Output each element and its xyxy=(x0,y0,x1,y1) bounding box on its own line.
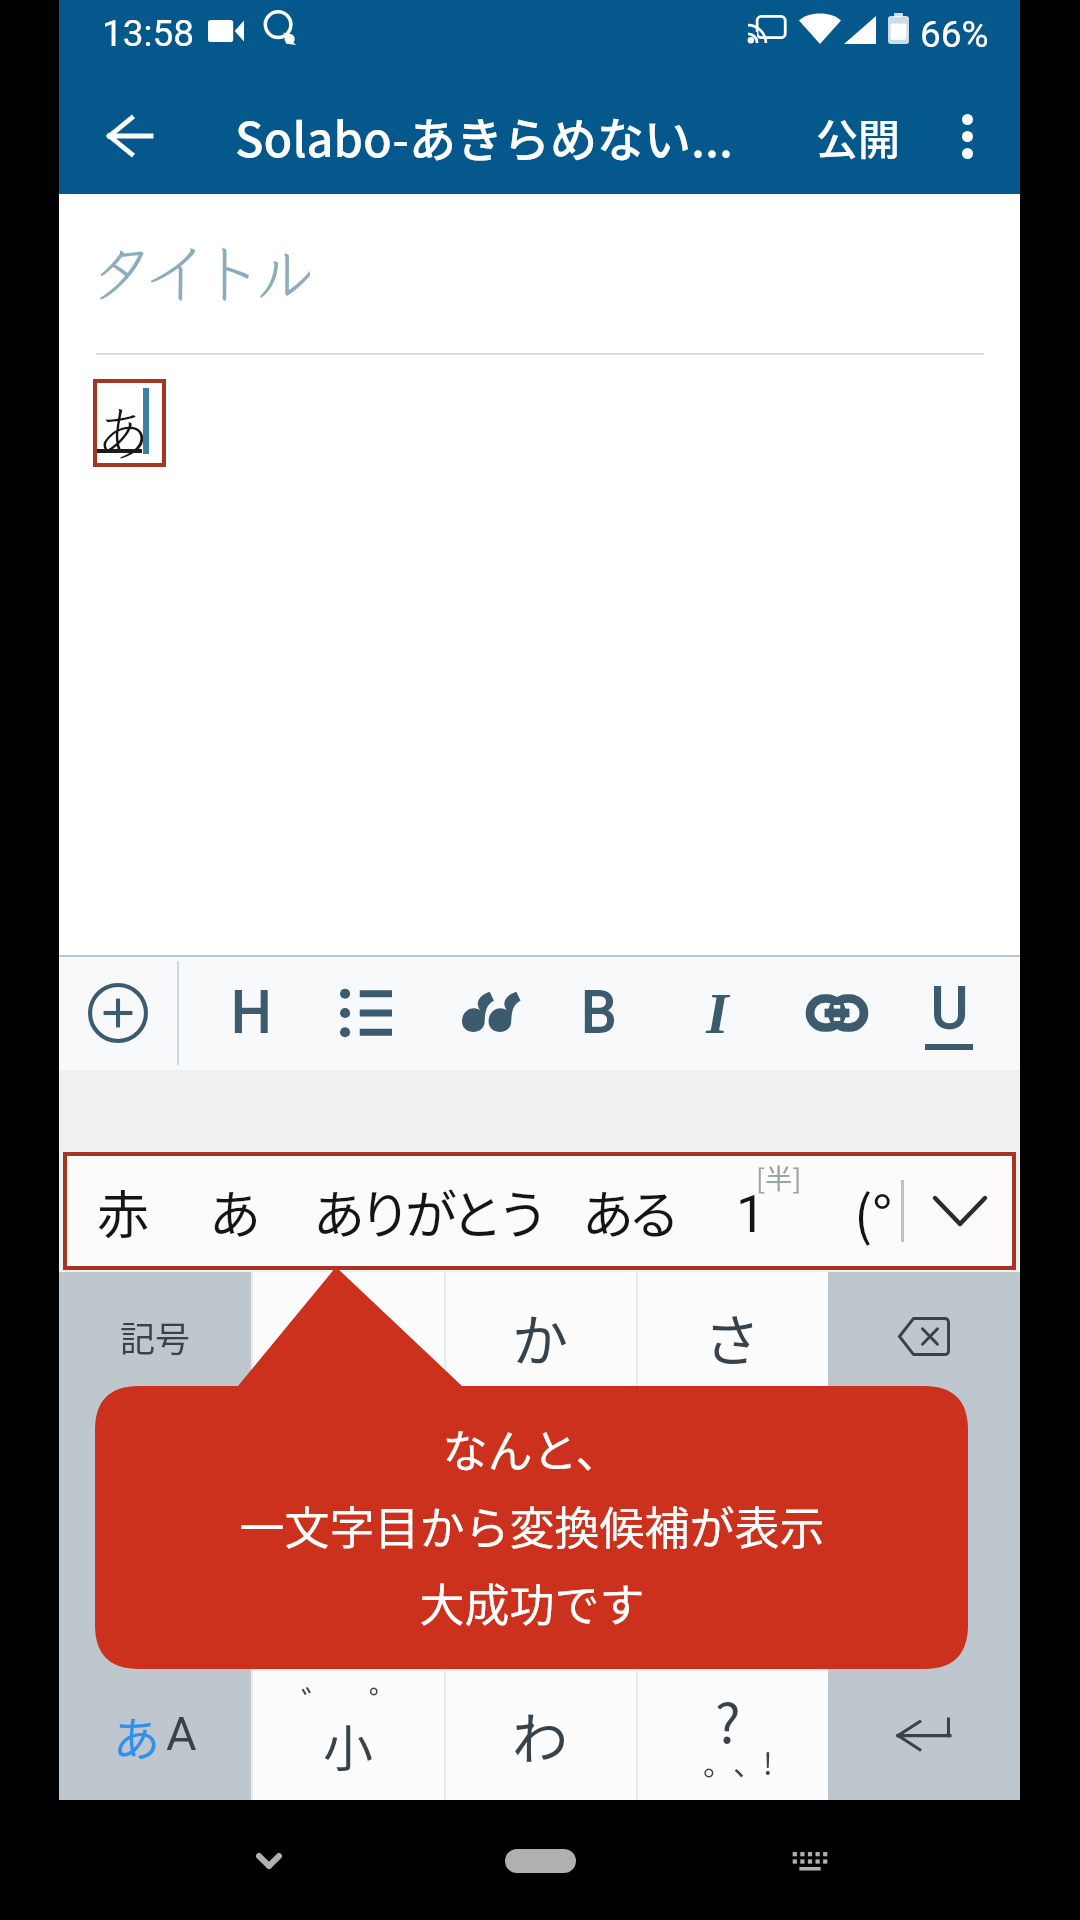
staticText: 13:58 xyxy=(102,12,195,55)
staticText: 1 xyxy=(736,1184,766,1245)
staticText: あ xyxy=(113,1701,160,1769)
button[interactable]: Switch keyboard xyxy=(750,1802,870,1920)
staticText: 大成功です xyxy=(419,1570,645,1635)
staticText: 赤 xyxy=(97,1174,144,1249)
staticText: あ xyxy=(209,1174,256,1249)
button[interactable]: Expand candidates xyxy=(915,1152,1005,1270)
staticText: Solabo-あきらめない... xyxy=(235,102,734,170)
button[interactable]: ありがとう xyxy=(288,1152,568,1270)
button[interactable]: Hide keyboard xyxy=(209,1802,329,1920)
button[interactable]: More options xyxy=(919,78,1015,194)
staticText: H xyxy=(231,979,272,1046)
button[interactable]: た xyxy=(251,1400,444,1528)
staticText: さ xyxy=(704,1296,760,1377)
button[interactable]: 1 xyxy=(700,1152,860,1270)
staticText: 小 xyxy=(323,1709,373,1781)
staticText: なんと、 xyxy=(442,1416,621,1481)
staticText: 一文字目から変換候補が表示 xyxy=(239,1493,825,1558)
button[interactable]: H xyxy=(206,955,296,1070)
button[interactable]: Quote xyxy=(443,955,533,1070)
staticText: わ xyxy=(512,1694,568,1775)
button[interactable]: 記号 xyxy=(59,1272,251,1400)
button[interactable]: Bullet list xyxy=(321,955,411,1070)
staticText: B xyxy=(581,979,617,1046)
staticText: タイトル xyxy=(88,218,310,304)
staticText: や xyxy=(512,1558,568,1639)
button[interactable]: あ xyxy=(59,1669,251,1800)
staticText: な xyxy=(512,1424,568,1505)
button[interactable]: さ xyxy=(636,1272,828,1400)
staticText: 。、! xyxy=(703,1740,773,1783)
button[interactable]: I xyxy=(672,955,762,1070)
button[interactable]: や xyxy=(444,1528,636,1669)
button[interactable]: か xyxy=(444,1272,636,1400)
button[interactable]: は xyxy=(636,1400,828,1528)
button[interactable]: ゛ ゜ xyxy=(251,1669,444,1800)
button[interactable]: 赤 xyxy=(0,1152,260,1270)
button[interactable]: ら xyxy=(636,1528,828,1669)
button[interactable]: ある xyxy=(488,1152,768,1270)
staticText: 66% xyxy=(920,13,989,56)
staticText: A xyxy=(166,1706,197,1761)
button[interactable]: B xyxy=(554,955,644,1070)
button[interactable] xyxy=(828,1528,1020,1669)
staticText: ゛ ゜ xyxy=(301,1677,403,1726)
staticText: ある xyxy=(582,1174,675,1249)
button[interactable]: U xyxy=(904,955,994,1070)
staticText: あ xyxy=(94,387,153,471)
staticText: 公開 xyxy=(816,106,901,167)
button[interactable]: ☆123 xyxy=(59,1400,251,1528)
button[interactable]: な xyxy=(444,1400,636,1528)
staticText: か xyxy=(512,1296,568,1377)
staticText: U xyxy=(931,975,968,1042)
button[interactable]: あ xyxy=(251,1272,444,1400)
button[interactable]: 公開 xyxy=(785,78,931,194)
button[interactable]: Add block xyxy=(73,955,163,1070)
button[interactable]: Insert link xyxy=(792,955,882,1070)
staticText: あ xyxy=(320,1296,376,1377)
button[interactable]: ? xyxy=(636,1669,828,1800)
button[interactable] xyxy=(828,1669,1020,1800)
button[interactable]: ABC xyxy=(59,1528,251,1669)
button[interactable] xyxy=(828,1272,1020,1400)
button[interactable]: ま xyxy=(251,1528,444,1669)
button[interactable]: Back xyxy=(77,78,181,194)
button[interactable]: あ xyxy=(92,1152,372,1270)
staticText: ? xyxy=(715,1680,741,1758)
staticText: ありがとう xyxy=(313,1174,544,1249)
staticText: 記号 xyxy=(120,1311,191,1362)
staticText: [半] xyxy=(756,1158,802,1197)
button[interactable] xyxy=(828,1400,1020,1528)
button[interactable]: わ xyxy=(444,1669,636,1800)
staticText: (° xyxy=(854,1172,893,1250)
button[interactable]: Home xyxy=(480,1802,600,1920)
button[interactable]: (° xyxy=(803,1152,943,1270)
staticText: I xyxy=(706,981,729,1045)
